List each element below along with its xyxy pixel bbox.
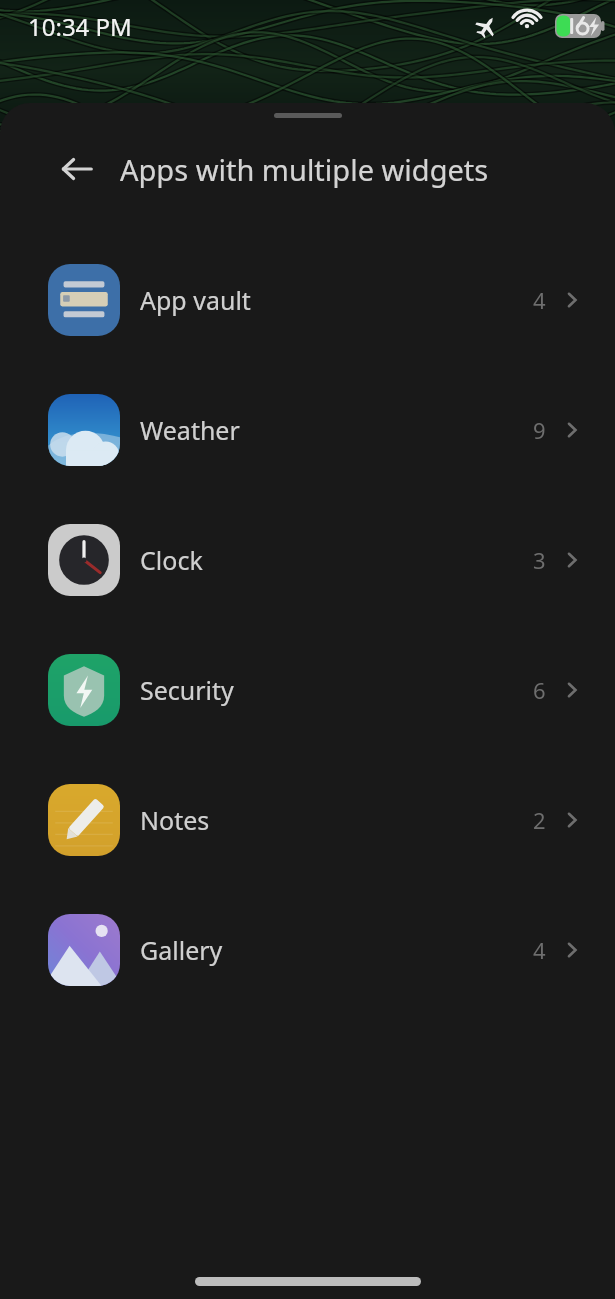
staticText: Gallery xyxy=(140,933,223,967)
staticText: Weather xyxy=(140,413,240,447)
staticText: Apps with multiple widgets xyxy=(120,150,489,189)
button[interactable]: Weather xyxy=(0,365,615,495)
button[interactable]: Clock xyxy=(0,495,615,625)
staticText: Notes xyxy=(140,803,210,837)
button[interactable]: App vault xyxy=(0,235,615,365)
button[interactable]: Notes xyxy=(0,755,615,885)
staticText: 10:34 PM xyxy=(28,10,132,43)
staticText: 4 xyxy=(533,935,546,965)
staticText: Clock xyxy=(140,543,203,577)
staticText: 3 xyxy=(533,545,546,575)
staticText: 9 xyxy=(533,415,546,445)
button[interactable]: Back xyxy=(48,140,106,198)
button[interactable]: Gallery xyxy=(0,885,615,1015)
staticText: 2 xyxy=(533,805,546,835)
button[interactable]: Security xyxy=(0,625,615,755)
staticText: 6 xyxy=(533,675,546,705)
staticText: 4 xyxy=(533,285,546,315)
staticText: App vault xyxy=(140,283,251,317)
staticText: Security xyxy=(140,673,234,707)
